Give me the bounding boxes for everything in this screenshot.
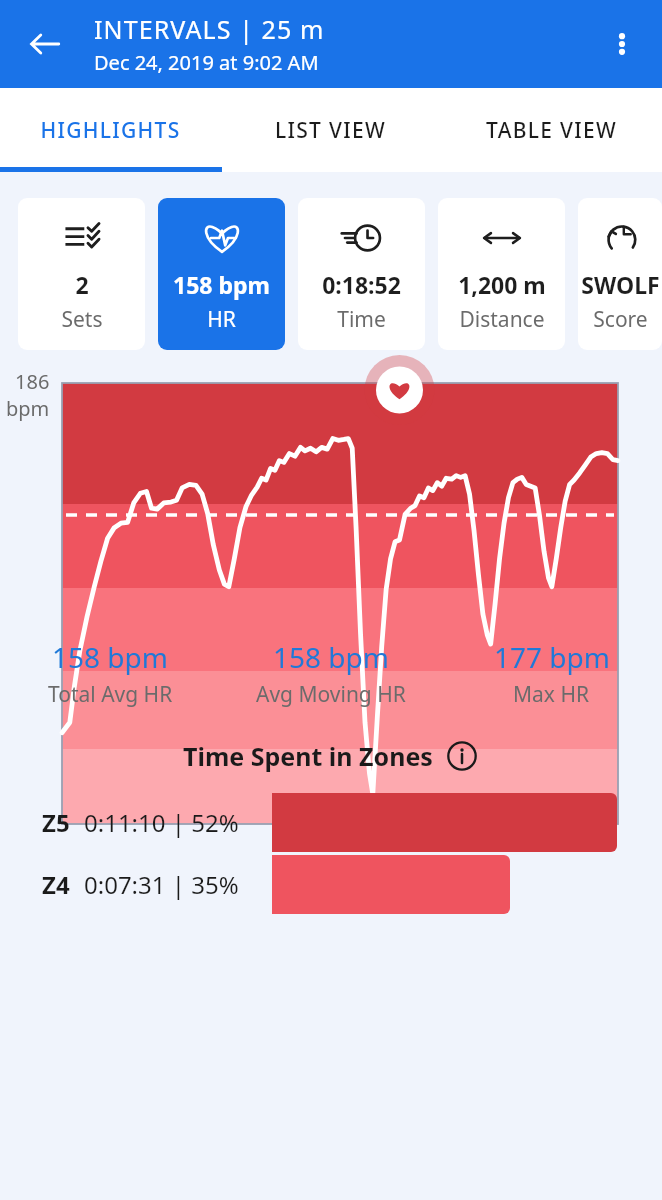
- staticText: Time: [337, 305, 386, 334]
- button[interactable]: 0:18:52: [298, 198, 425, 350]
- button[interactable]: 1,200 m: [438, 198, 565, 350]
- staticText: Distance: [459, 305, 545, 334]
- staticText: 177 bpm: [494, 638, 610, 676]
- button[interactable]: Z4: [0, 855, 662, 914]
- staticText: 0:11:10 | 52%: [84, 806, 239, 839]
- staticText: 0:18:52: [322, 269, 401, 300]
- staticText: 186: [15, 368, 50, 395]
- staticText: SWOLF: [581, 269, 660, 300]
- staticText: Max HR: [513, 680, 590, 709]
- button[interactable]: 158 bpm: [0, 638, 220, 709]
- button[interactable]: SWOLF: [578, 198, 662, 350]
- staticText: 0:07:31 | 35%: [84, 868, 239, 901]
- staticText: Z5: [42, 806, 70, 839]
- button[interactable]: 177 bpm: [441, 638, 662, 709]
- staticText: Dec 24, 2019 at 9:02 AM: [94, 49, 319, 76]
- staticText: HR: [207, 305, 236, 334]
- staticText: 158 bpm: [173, 269, 270, 300]
- staticText: 158 bpm: [273, 638, 389, 676]
- button[interactable]: 2: [18, 198, 145, 350]
- staticText: 158 bpm: [52, 638, 168, 676]
- button[interactable]: 158 bpm: [220, 638, 441, 709]
- button[interactable]: 158 bpm: [158, 198, 285, 350]
- button[interactable]: Info about zones: [445, 739, 479, 773]
- button[interactable]: LIST VIEW: [220, 88, 441, 172]
- staticText: Sets: [61, 305, 103, 334]
- button[interactable]: HIGHLIGHTS: [0, 88, 220, 172]
- staticText: LIST VIEW: [275, 116, 386, 145]
- staticText: HIGHLIGHTS: [40, 116, 181, 145]
- staticText: 2: [75, 269, 89, 300]
- staticText: TABLE VIEW: [486, 116, 617, 145]
- staticText: Score: [593, 305, 648, 334]
- staticText: Time Spent in Zones: [183, 739, 433, 773]
- button[interactable]: Back: [16, 15, 74, 73]
- button[interactable]: TABLE VIEW: [441, 88, 662, 172]
- staticText: Z4: [42, 868, 70, 901]
- staticText: INTERVALS | 25 m: [94, 12, 325, 46]
- button[interactable]: More options: [594, 16, 650, 72]
- staticText: 1,200 m: [458, 269, 546, 300]
- staticText: Avg Moving HR: [256, 680, 406, 709]
- staticText: Total Avg HR: [48, 680, 173, 709]
- button[interactable]: Z5: [0, 793, 662, 852]
- staticText: bpm: [6, 395, 50, 422]
